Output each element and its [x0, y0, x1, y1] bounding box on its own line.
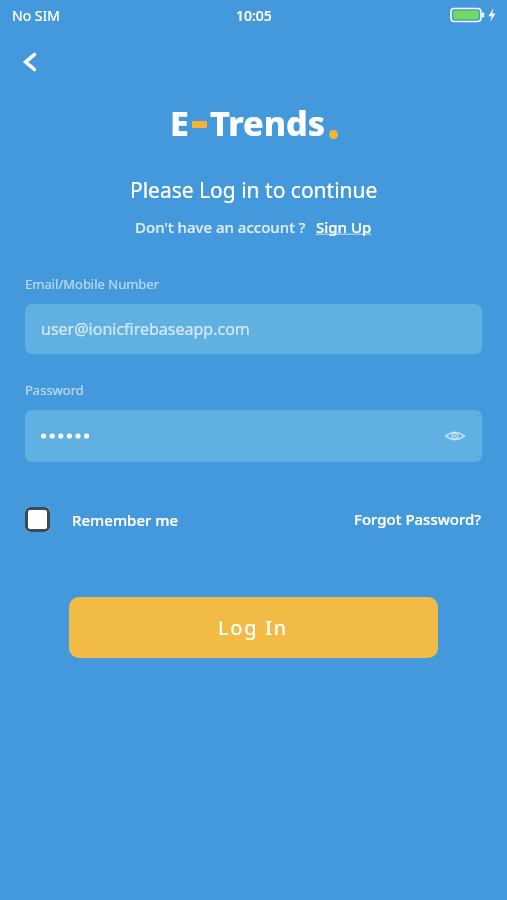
staticText: Don't have an account ? [135, 217, 306, 237]
staticText: E [170, 100, 189, 146]
staticText: Log In [218, 614, 289, 641]
button[interactable]: Forgot Password? [354, 509, 482, 529]
staticText: Remember me [72, 510, 179, 530]
button[interactable]: user@ionicfirebaseapp.com [25, 304, 482, 354]
button[interactable]: Show password [442, 423, 468, 449]
staticText: user@ionicfirebaseapp.com [41, 318, 250, 340]
button[interactable]: Show password [25, 410, 482, 462]
button[interactable]: Remember me [25, 507, 183, 532]
button[interactable]: Back [8, 40, 52, 84]
button[interactable]: Sign Up [316, 217, 372, 237]
staticText: 10:05 [236, 6, 272, 25]
staticText: Forgot Password? [354, 509, 482, 529]
staticText: Sign Up [316, 217, 372, 237]
staticText: Email/Mobile Number [25, 275, 160, 293]
button[interactable]: Log In [69, 597, 438, 658]
staticText: Please Log in to continue [130, 176, 378, 205]
staticText: Trends [210, 100, 326, 146]
staticText: Password [25, 381, 84, 399]
staticText: No SIM [12, 6, 60, 25]
